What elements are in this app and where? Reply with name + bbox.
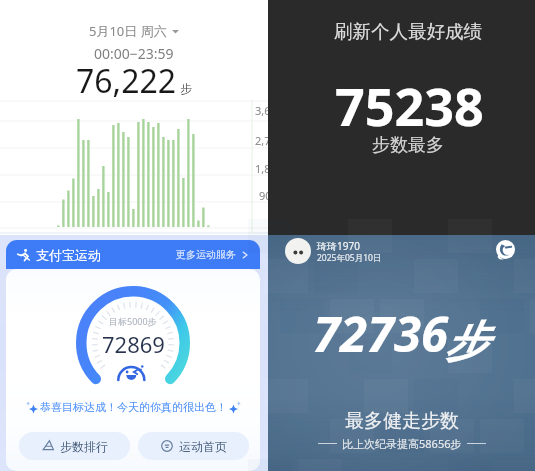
staticText: 琦琦1970 — [317, 239, 360, 253]
staticText: 00:00−23:59 — [94, 44, 174, 63]
staticText: 比上次纪录提高58656步 — [342, 436, 462, 451]
staticText: 步数排行 — [60, 439, 108, 454]
staticText: 恭喜目标达成！今天的你真的很出色！ — [40, 400, 227, 414]
staticText: 75238 — [335, 70, 484, 141]
staticText: 步数最多 — [372, 134, 444, 157]
staticText: 运动首页 — [179, 439, 227, 454]
staticText: 目标5000步 — [109, 315, 157, 327]
staticText: 900 — [259, 188, 299, 203]
button[interactable]: App logo — [496, 240, 515, 259]
button[interactable]: 运动首页 — [138, 432, 249, 460]
button[interactable]: 步数排行 — [19, 432, 130, 460]
staticText: 5月10日 周六 — [89, 22, 167, 40]
staticText: 1,800 — [255, 161, 295, 176]
staticText: 2,700 — [255, 133, 295, 148]
button[interactable]: 支付宝运动 — [6, 240, 260, 269]
staticText: 支付宝运动 — [36, 247, 101, 263]
staticText: 72736 — [313, 300, 448, 367]
staticText: 76,222 — [76, 59, 177, 103]
staticText: 步 — [180, 81, 192, 96]
staticText: 步 — [445, 316, 487, 369]
staticText: 3,600 — [255, 103, 295, 118]
staticText: 刷新个人最好成绩 — [334, 20, 482, 43]
staticText: 更多运动服务 — [176, 248, 236, 261]
staticText: 最多健走步数 — [345, 409, 459, 433]
staticText: 2025年05月10日 — [317, 252, 382, 264]
staticText: 72869 — [102, 329, 165, 359]
